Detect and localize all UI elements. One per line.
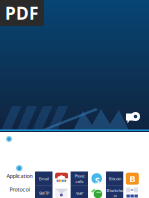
button[interactable]: Mail xyxy=(53,186,70,198)
staticText: Protocol xyxy=(9,186,29,193)
staticText: PDF xyxy=(5,1,39,24)
button[interactable]: Bitcoin xyxy=(106,171,123,186)
button[interactable]: VoIP call xyxy=(88,186,106,198)
staticText: S xyxy=(95,174,100,186)
staticText: VoIP xyxy=(76,190,83,196)
button[interactable]: Email xyxy=(35,171,53,186)
staticText: SMTP xyxy=(39,190,49,196)
staticText: Email xyxy=(39,176,49,181)
button[interactable]: Blockchain xyxy=(123,186,141,198)
staticText: B xyxy=(129,172,135,185)
staticText: Application xyxy=(6,172,32,180)
button[interactable]: Blockchain xyxy=(106,186,123,198)
button[interactable]: Phone calls xyxy=(70,171,88,186)
button[interactable]: Skype xyxy=(88,171,106,186)
staticText: Blockchain xyxy=(106,188,123,198)
staticText: Bitcoin xyxy=(109,176,121,181)
button[interactable]: SMTP xyxy=(35,186,53,198)
button[interactable]: Gmail xyxy=(53,171,70,186)
staticText: Phone calls xyxy=(74,173,84,184)
button[interactable]: VoIP xyxy=(70,186,88,198)
button[interactable]: Bitcoin xyxy=(123,171,141,186)
